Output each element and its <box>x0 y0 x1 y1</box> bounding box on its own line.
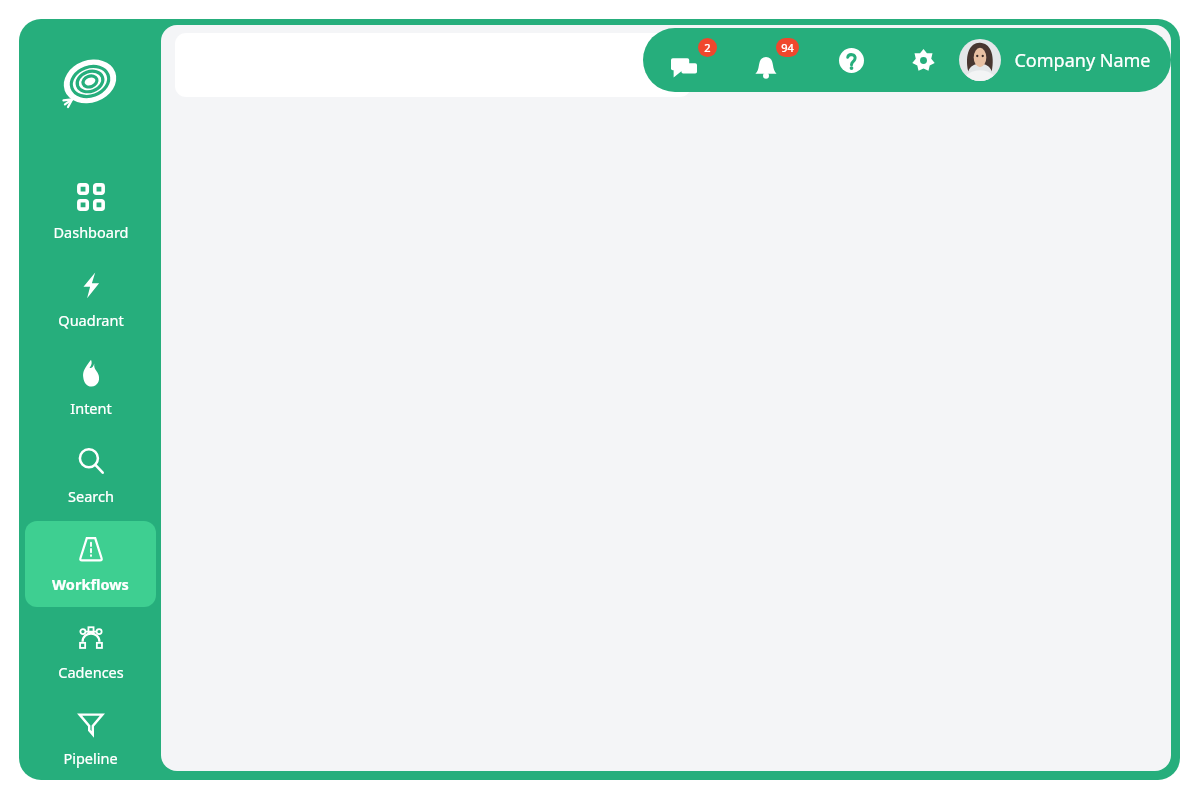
button[interactable]: Notifications <box>753 38 797 82</box>
button[interactable]: Intent <box>25 345 156 431</box>
staticText: Company Name <box>1014 48 1151 73</box>
staticText: Quadrant <box>58 310 124 330</box>
button[interactable]: Company Name <box>959 39 1157 81</box>
staticText: Search <box>68 486 114 506</box>
staticText: Cadences <box>58 662 124 682</box>
button[interactable]: Pipeline <box>25 697 156 779</box>
button[interactable]: Cadences <box>25 609 156 695</box>
staticText: 94 <box>781 40 794 55</box>
staticText: Dashboard <box>53 222 129 242</box>
button[interactable]: Dashboard <box>25 169 156 255</box>
button[interactable]: Search <box>25 433 156 519</box>
button[interactable]: Help <box>831 40 871 80</box>
staticText: 2 <box>704 40 711 55</box>
button[interactable]: Messages <box>671 38 715 82</box>
staticText: Intent <box>70 398 112 418</box>
staticText: Workflows <box>52 574 129 594</box>
button[interactable] <box>175 33 691 97</box>
button[interactable]: Workflows <box>25 521 156 607</box>
staticText: Pipeline <box>63 748 118 768</box>
button[interactable]: Settings <box>903 40 943 80</box>
button[interactable]: Quadrant <box>25 257 156 343</box>
